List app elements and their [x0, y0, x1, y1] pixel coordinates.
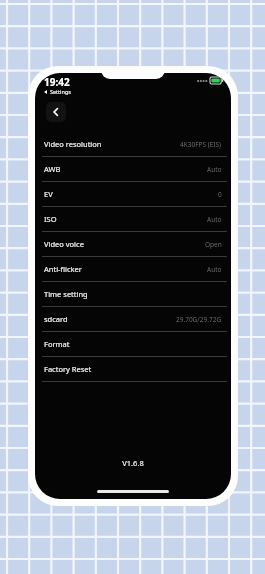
staticText: Auto — [207, 165, 222, 174]
button[interactable]: EV — [35, 182, 231, 206]
button[interactable]: sdcard — [35, 307, 231, 331]
staticText: 0 — [218, 190, 222, 199]
button[interactable]: Anti-flicker — [35, 257, 231, 281]
staticText: Auto — [207, 215, 222, 224]
button[interactable]: Back — [46, 102, 66, 122]
button[interactable]: Format — [35, 332, 231, 356]
staticText: 29.70G/29.72G — [176, 315, 222, 324]
staticText: V1.6.8 — [35, 458, 231, 468]
staticText: Factory Reset — [44, 364, 92, 374]
button[interactable]: Video voice — [35, 232, 231, 256]
staticText: 19:42 — [44, 75, 70, 89]
button[interactable]: Time setting — [35, 282, 231, 306]
staticText: Settings — [50, 88, 71, 95]
staticText: Anti-flicker — [44, 264, 82, 274]
staticText: sdcard — [44, 314, 68, 324]
staticText: EV — [44, 189, 53, 199]
button[interactable]: ISO — [35, 207, 231, 231]
staticText: ISO — [44, 214, 57, 224]
staticText: Video voice — [44, 239, 84, 249]
staticText: Open — [205, 240, 222, 249]
staticText: Video resolution — [44, 139, 102, 149]
button[interactable]: AWB — [35, 157, 231, 181]
staticText: AWB — [44, 164, 61, 174]
staticText: 4K30FPS (EIS) — [180, 140, 222, 149]
staticText: Format — [44, 339, 70, 349]
button[interactable]: Factory Reset — [35, 357, 231, 381]
staticText: Time setting — [44, 289, 88, 299]
button[interactable]: Video resolution — [35, 132, 231, 156]
staticText: Auto — [207, 265, 222, 274]
